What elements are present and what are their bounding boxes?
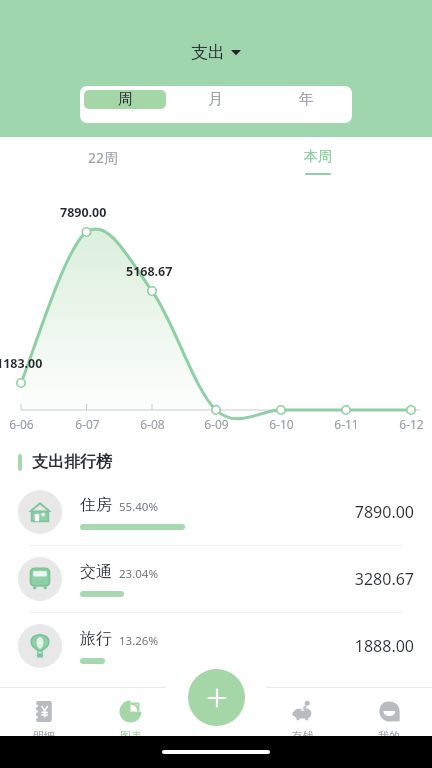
staticText: 13.26% — [119, 633, 158, 649]
staticText: 交通 — [80, 562, 112, 582]
button[interactable]: 月 — [174, 90, 257, 109]
button[interactable]: 存钱 — [260, 696, 346, 747]
button[interactable]: 本周 — [294, 145, 342, 178]
staticText: 7890.00 — [354, 501, 414, 523]
staticText: 周 — [118, 90, 133, 109]
staticText: 我的 — [378, 729, 400, 743]
staticText: 6-08 — [140, 416, 165, 432]
button[interactable]: 周 — [84, 90, 166, 109]
staticText: 6-11 — [334, 416, 359, 432]
staticText: 存钱 — [292, 729, 314, 743]
button[interactable]: 年 — [265, 90, 348, 109]
staticText: 图表 — [120, 729, 142, 743]
button[interactable]: 我的 — [346, 696, 432, 747]
staticText: 住房 — [80, 495, 112, 515]
staticText: 支出排行榜 — [32, 452, 112, 472]
staticText: 23.04% — [119, 566, 158, 582]
staticText: 6-10 — [269, 416, 294, 432]
staticText: 6-06 — [9, 416, 34, 432]
staticText: 支出 — [191, 42, 225, 63]
button[interactable]: 22周 — [78, 145, 129, 170]
button[interactable]: 住房 — [0, 479, 432, 545]
staticText: 明细 — [33, 729, 55, 743]
button[interactable]: 明细 — [0, 696, 87, 747]
button[interactable]: 支出 — [185, 40, 247, 65]
staticText: 3280.67 — [354, 568, 414, 590]
button[interactable]: Add — [188, 669, 245, 726]
button[interactable]: 旅行 — [0, 613, 432, 679]
staticText: 6-12 — [399, 416, 424, 432]
staticText: 年 — [299, 90, 314, 109]
staticText: 5168.67 — [126, 263, 173, 280]
staticText: 22周 — [88, 148, 119, 167]
staticText: 1183.00 — [0, 355, 43, 372]
staticText: 月 — [208, 90, 223, 109]
staticText: 1888.00 — [354, 635, 414, 657]
button[interactable]: 图表 — [87, 696, 174, 747]
staticText: 55.40% — [119, 499, 158, 515]
staticText: 7890.00 — [60, 204, 107, 221]
staticText: 6-07 — [75, 416, 100, 432]
button[interactable]: 交通 — [0, 546, 432, 612]
staticText: 6-09 — [204, 416, 229, 432]
staticText: 本周 — [304, 148, 332, 166]
staticText: 旅行 — [80, 629, 112, 649]
